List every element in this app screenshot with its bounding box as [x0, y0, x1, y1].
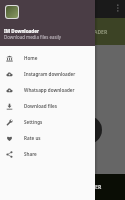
button[interactable]: Instagram downloader — [0, 66, 95, 82]
button[interactable]: Whatsapp downloader — [0, 82, 95, 98]
button[interactable]: Home — [0, 50, 95, 66]
button[interactable]: Download files — [0, 98, 95, 114]
button[interactable]: Share — [0, 146, 95, 162]
staticText: Download media files easily — [4, 34, 62, 40]
staticText: IM DOWNLOADER — [63, 29, 108, 36]
staticText: Settings — [24, 119, 43, 125]
staticText: Share — [24, 151, 37, 157]
staticText: IM Downloader — [4, 28, 40, 34]
staticText: Rate us — [24, 135, 41, 141]
button[interactable]: Settings — [0, 114, 95, 130]
staticText: Download files — [24, 103, 57, 109]
button[interactable]: More options — [111, 2, 123, 14]
staticText: Whatsapp downloader — [24, 87, 75, 93]
button[interactable]: Rate us — [0, 130, 95, 146]
button[interactable]: Add — [74, 116, 102, 144]
staticText: Home — [24, 55, 38, 61]
staticText: Instagram downloader — [24, 71, 76, 77]
staticText: IM DOWNLOADER — [57, 184, 102, 191]
